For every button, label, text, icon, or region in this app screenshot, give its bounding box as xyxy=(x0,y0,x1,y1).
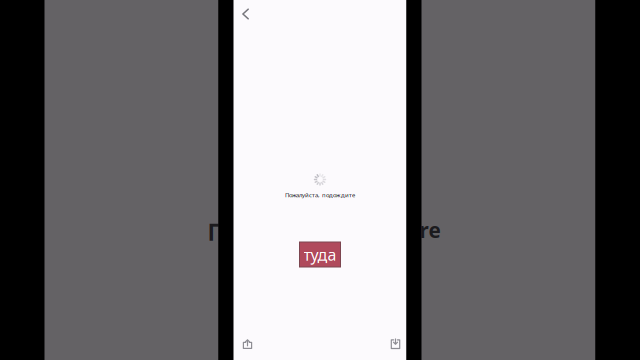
button[interactable]: Save xyxy=(383,333,407,355)
staticText: туда xyxy=(303,244,336,265)
button[interactable]: Share xyxy=(235,333,259,355)
staticText: Пожалуйста, подождите xyxy=(285,191,355,199)
staticText: П xyxy=(207,217,224,247)
staticText: re xyxy=(419,216,440,244)
button[interactable]: Back xyxy=(233,2,257,26)
button[interactable]: туда xyxy=(299,242,340,267)
